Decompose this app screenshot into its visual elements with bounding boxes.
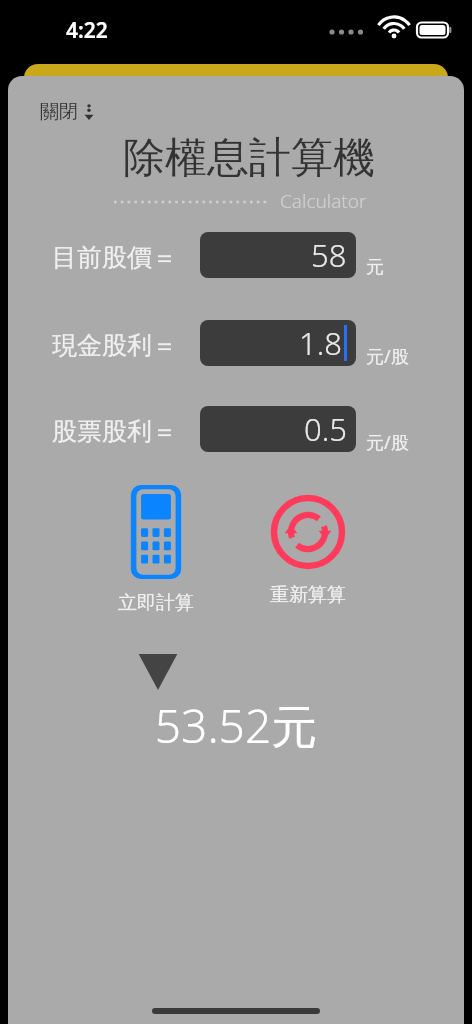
other: 重新算算 [270, 494, 346, 570]
staticText: 1.8 [299, 322, 342, 364]
button[interactable]: 0.5 [200, 406, 356, 452]
button[interactable]: 58 [200, 232, 356, 278]
staticText: 現金股利＝ [52, 330, 177, 361]
staticText: 立即計算 [118, 591, 194, 615]
staticText: 0.5 [304, 408, 347, 450]
button[interactable]: 1.8 [200, 320, 356, 366]
staticText: 58 [311, 234, 347, 276]
button[interactable]: 立即計算 [118, 482, 212, 615]
button[interactable]: 重新算算 [270, 482, 364, 607]
staticText: 元/股 [366, 344, 409, 369]
staticText: 目前股價＝ [52, 242, 177, 273]
staticText: Calculator [280, 188, 367, 214]
staticText: 元 [366, 256, 384, 279]
staticText: 元/股 [366, 430, 409, 455]
staticText: 重新算算 [270, 583, 346, 607]
button[interactable]: 關閉 [36, 97, 99, 127]
staticText: 4:22 [66, 16, 108, 45]
staticText: 股票股利＝ [52, 416, 177, 447]
other: 立即計算 [122, 482, 190, 582]
staticText: 除權息計算機 [34, 132, 464, 185]
staticText: 53.52元 [8, 694, 464, 757]
staticText: 關閉 [40, 100, 78, 124]
